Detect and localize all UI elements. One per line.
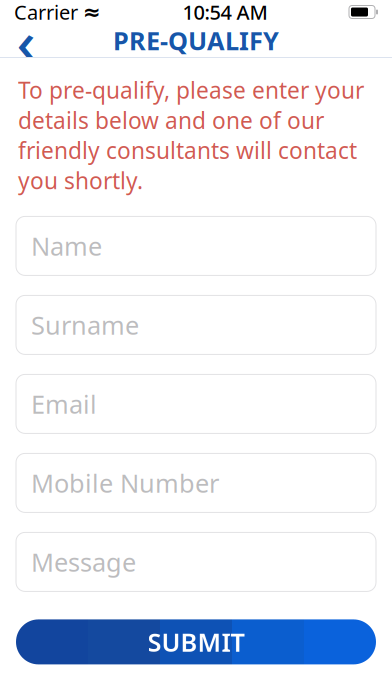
button[interactable]: Name xyxy=(16,216,376,275)
button[interactable]: Surname xyxy=(16,295,376,354)
staticText: To pre-qualify, please enter your detail… xyxy=(18,75,364,195)
staticText: ≈ xyxy=(83,0,101,24)
button[interactable]: SUBMIT xyxy=(16,619,376,664)
staticText: SUBMIT xyxy=(147,625,244,659)
staticText: Surname xyxy=(31,308,139,342)
staticText: PRE-QUALIFY xyxy=(113,24,279,57)
staticText: 10:54 AM xyxy=(182,0,267,25)
button[interactable]: Message xyxy=(16,532,376,591)
staticText: Carrier xyxy=(14,0,78,25)
button[interactable]: Email xyxy=(16,374,376,433)
button[interactable]: Back xyxy=(4,23,48,57)
staticText: Name xyxy=(31,229,102,263)
staticText: ‹ xyxy=(16,1,35,79)
button[interactable]: Mobile Number xyxy=(16,453,376,512)
staticText: Email xyxy=(31,387,97,421)
staticText: Mobile Number xyxy=(31,466,219,500)
staticText: Message xyxy=(31,545,136,579)
